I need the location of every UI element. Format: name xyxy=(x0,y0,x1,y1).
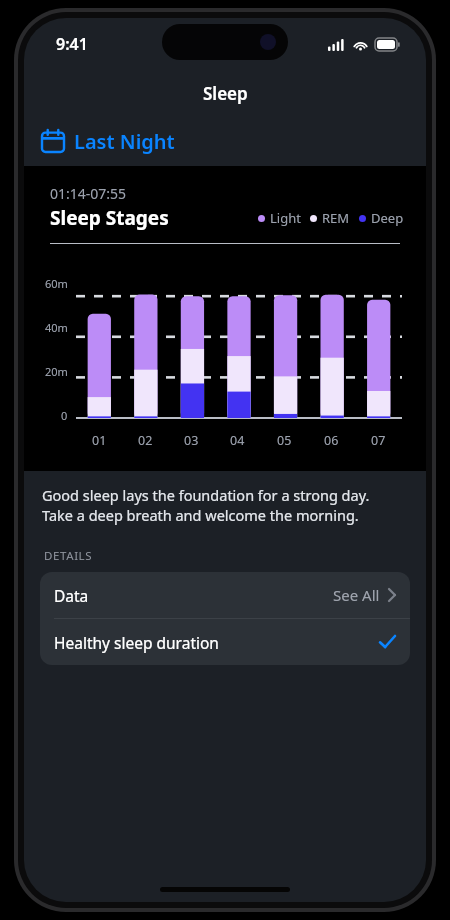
staticText: Light xyxy=(270,209,301,227)
staticText: Sleep xyxy=(203,82,248,105)
staticText: 03 xyxy=(184,432,199,449)
staticText: 04 xyxy=(230,432,245,449)
staticText: REM xyxy=(322,209,350,227)
staticText: Good sleep lays the foundation for a str… xyxy=(42,485,370,526)
staticText: 01 xyxy=(92,432,107,449)
staticText: Last Night xyxy=(74,128,175,155)
staticText: 06 xyxy=(324,432,339,449)
staticText: See All xyxy=(333,585,380,605)
other: Checked xyxy=(379,635,396,649)
staticText: DETAILS xyxy=(44,548,93,564)
staticText: Deep xyxy=(371,209,404,227)
button[interactable]: Last Night xyxy=(24,116,426,166)
staticText: 02 xyxy=(138,432,153,449)
staticText: Healthy sleep duration xyxy=(54,632,219,653)
staticText: 40m xyxy=(45,320,68,335)
staticText: 9:41 xyxy=(56,33,88,55)
staticText: 0 xyxy=(61,408,68,423)
button[interactable]: Healthy sleep duration xyxy=(40,619,410,665)
staticText: Data xyxy=(54,585,89,606)
staticText: 05 xyxy=(277,432,292,449)
staticText: 07 xyxy=(371,432,386,449)
staticText: Sleep Stages xyxy=(50,205,169,231)
button[interactable]: Data xyxy=(40,572,410,618)
staticText: 60m xyxy=(45,276,68,291)
staticText: 20m xyxy=(45,364,68,379)
staticText: 01:14-07:55 xyxy=(50,184,127,203)
